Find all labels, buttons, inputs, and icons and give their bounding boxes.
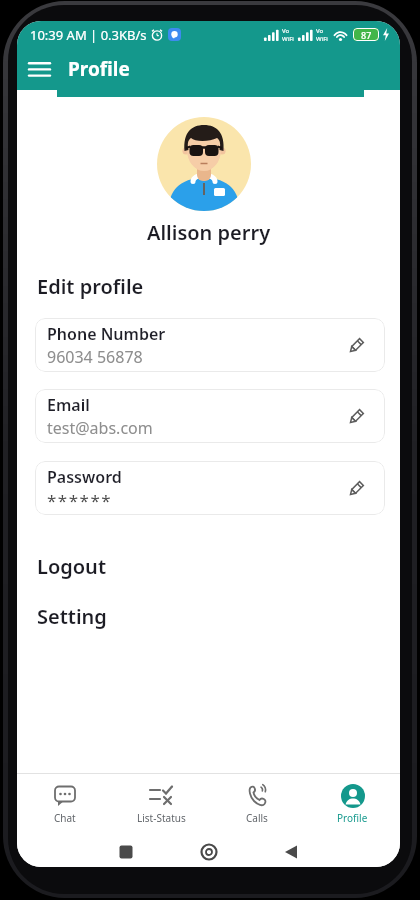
staticText: Phone Number bbox=[47, 323, 166, 345]
button[interactable]: Chat bbox=[17, 774, 113, 834]
button[interactable] bbox=[119, 845, 133, 859]
button[interactable]: Profile bbox=[305, 774, 400, 834]
button[interactable] bbox=[284, 845, 298, 859]
button[interactable]: Setting bbox=[37, 603, 107, 630]
staticText: 87 bbox=[361, 29, 372, 41]
staticText: WiFi bbox=[316, 35, 328, 43]
button[interactable]: List-Status bbox=[113, 774, 209, 834]
button[interactable]: Logout bbox=[37, 553, 106, 580]
staticText: Edit profile bbox=[37, 273, 144, 300]
staticText: Allison perry bbox=[147, 219, 271, 246]
staticText: test@abs.com bbox=[47, 417, 153, 439]
button[interactable] bbox=[200, 843, 218, 861]
staticText: List-Status bbox=[137, 811, 186, 825]
staticText: Chat bbox=[54, 811, 76, 825]
staticText: ****** bbox=[47, 489, 113, 512]
staticText: 10:39 AM | 0.3KB/s bbox=[30, 26, 147, 44]
button[interactable]: Password bbox=[35, 461, 385, 515]
staticText: Vo bbox=[316, 27, 324, 35]
button[interactable] bbox=[17, 48, 61, 90]
staticText: WiFi bbox=[282, 35, 294, 43]
staticText: Profile bbox=[68, 56, 130, 82]
button[interactable]: Phone Number bbox=[35, 318, 385, 372]
staticText: Password bbox=[47, 466, 122, 488]
staticText: Vo bbox=[282, 27, 290, 35]
staticText: Calls bbox=[246, 811, 268, 825]
button[interactable]: Calls bbox=[209, 774, 305, 834]
staticText: 96034 56878 bbox=[47, 346, 143, 368]
button[interactable]: Email bbox=[35, 389, 385, 443]
staticText: Email bbox=[47, 394, 90, 416]
staticText: Profile bbox=[337, 811, 368, 825]
